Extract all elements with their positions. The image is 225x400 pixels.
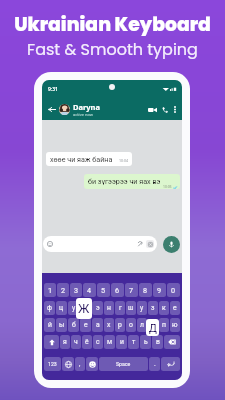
button[interactable]: ш [126, 301, 136, 315]
button[interactable]: More options [170, 104, 180, 114]
button[interactable]: 7 [125, 283, 138, 297]
button[interactable]: ь [140, 335, 151, 349]
button[interactable]: й [44, 318, 55, 332]
staticText: н [107, 304, 111, 312]
staticText: Space [116, 361, 131, 367]
button[interactable]: э [92, 301, 103, 315]
staticText: ш [128, 304, 134, 312]
staticText: 3 [74, 286, 79, 294]
staticText: в [156, 338, 160, 346]
button[interactable]: 1 [44, 283, 56, 297]
button[interactable]: х [104, 318, 114, 332]
button[interactable]: 3 [70, 283, 82, 297]
staticText: е [84, 321, 88, 329]
button[interactable]: у [68, 301, 79, 315]
button[interactable] [161, 357, 180, 371]
staticText: б [72, 321, 76, 329]
button[interactable]: т [128, 335, 139, 349]
button[interactable] [44, 335, 59, 349]
button[interactable]: би зүгээрээ чи яах вэ [84, 174, 180, 189]
button[interactable]: , [75, 357, 85, 371]
button[interactable]: 5 [97, 283, 110, 297]
button[interactable]: ц [56, 301, 67, 315]
staticText: ц [59, 304, 64, 312]
button[interactable] [62, 357, 74, 371]
button[interactable]: Д [146, 319, 159, 336]
staticText: 8 [143, 286, 148, 294]
button[interactable]: з [148, 301, 158, 315]
button[interactable]: . [149, 357, 160, 371]
staticText: Ukrainian Keyboard [14, 11, 211, 37]
staticText: ы [59, 321, 65, 329]
button[interactable]: Video call [146, 103, 159, 116]
button[interactable]: и [116, 335, 127, 349]
staticText: о [129, 321, 133, 329]
button[interactable]: л [137, 318, 147, 332]
button[interactable]: Back [45, 103, 58, 116]
button[interactable]: 8 [139, 283, 152, 297]
button[interactable]: р [115, 318, 125, 332]
staticText: 6 [115, 286, 120, 294]
button[interactable]: к [159, 301, 169, 315]
button[interactable]: п [159, 318, 169, 332]
staticText: 2 [61, 286, 66, 294]
button[interactable]: хөөе чи яаж байна [46, 152, 132, 166]
staticText: . [154, 360, 156, 368]
staticText: 9:31 [48, 86, 58, 93]
button[interactable]: Voice call [159, 104, 170, 115]
button[interactable]: 2 [57, 283, 69, 297]
button[interactable]: Record voice message [163, 236, 180, 253]
button[interactable]: ё [82, 335, 92, 349]
staticText: ь [144, 338, 148, 346]
button[interactable]: н [104, 301, 114, 315]
button[interactable]: ы [56, 318, 67, 332]
staticText: а [96, 321, 100, 329]
staticText: т [132, 338, 136, 346]
button[interactable]: о [126, 318, 136, 332]
button[interactable]: Space [99, 357, 148, 371]
button[interactable]: ю [170, 318, 180, 332]
staticText: м [107, 338, 113, 346]
button[interactable]: 123 [44, 357, 61, 371]
staticText: 4 [87, 286, 92, 294]
button[interactable]: б [68, 318, 79, 332]
staticText: Fast & Smooth typing [27, 38, 198, 60]
button[interactable]: е [170, 301, 180, 315]
button[interactable]: 0 [167, 283, 180, 297]
staticText: Д [149, 322, 157, 334]
button[interactable]: с [93, 335, 103, 349]
button[interactable] [164, 335, 180, 349]
button[interactable]: а [92, 318, 103, 332]
staticText: г [119, 304, 122, 312]
staticText: 10:05 [163, 185, 172, 189]
staticText: 9 [157, 286, 162, 294]
staticText: 5 [101, 286, 106, 294]
button[interactable]: 6 [111, 283, 124, 297]
staticText: и [120, 338, 124, 346]
button[interactable]: е [80, 318, 91, 332]
button[interactable]: ч [71, 335, 81, 349]
button[interactable]: 9 [153, 283, 166, 297]
button[interactable]: в [152, 335, 163, 349]
staticText: Daryna [73, 102, 100, 112]
staticText: ю [172, 321, 178, 329]
staticText: active now [73, 112, 93, 117]
button[interactable]: 4 [83, 283, 96, 297]
staticText: 10:04 [119, 159, 128, 163]
staticText: й [48, 321, 52, 329]
staticText: с [96, 338, 100, 346]
button[interactable]: ф [44, 301, 55, 315]
staticText: з [151, 304, 155, 312]
staticText: ф [47, 304, 52, 312]
button[interactable] [43, 236, 157, 252]
staticText: ё [85, 338, 89, 346]
button[interactable]: м [104, 335, 115, 349]
staticText: р [118, 321, 122, 329]
button[interactable]: я [60, 335, 70, 349]
staticText: 123 [48, 361, 57, 367]
button[interactable] [86, 357, 98, 371]
button[interactable]: у [137, 301, 147, 315]
staticText: е [173, 304, 177, 312]
button[interactable]: г [115, 301, 125, 315]
button[interactable]: Ж [76, 298, 92, 319]
